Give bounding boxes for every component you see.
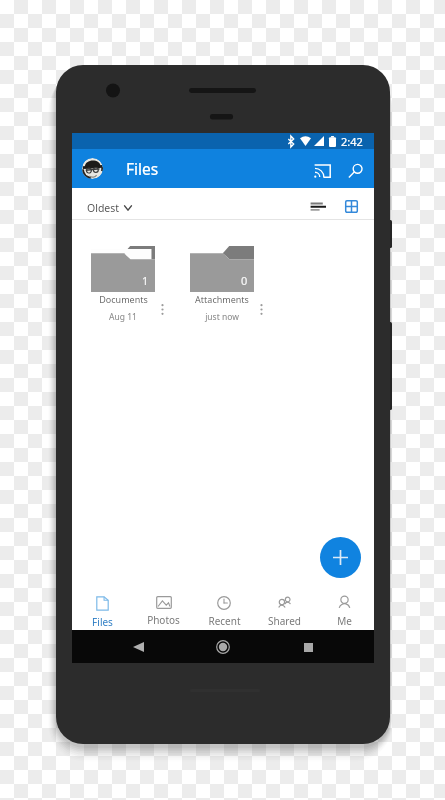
button[interactable]: Search xyxy=(340,156,370,186)
staticText: Shared xyxy=(268,614,301,628)
staticText: 2:42 xyxy=(341,134,363,149)
button[interactable]: Grid view xyxy=(339,194,363,218)
staticText: just now xyxy=(205,311,239,323)
button[interactable]: Sort xyxy=(306,194,330,218)
button[interactable]: Back xyxy=(127,636,149,658)
button[interactable]: Photos xyxy=(133,587,194,630)
button[interactable]: Oldest xyxy=(83,197,136,219)
staticText: 0 xyxy=(241,273,248,288)
staticText: Files xyxy=(126,158,159,179)
staticText: Photos xyxy=(147,613,180,627)
staticText: Attachments xyxy=(195,293,249,305)
staticText: Me xyxy=(337,614,352,628)
button[interactable]: 1 xyxy=(91,246,155,292)
button[interactable]: Recent xyxy=(194,587,254,630)
button[interactable]: Cast xyxy=(307,156,337,186)
button[interactable]: 0 xyxy=(190,246,254,292)
button[interactable]: More options xyxy=(254,302,268,316)
staticText: Documents xyxy=(99,293,148,305)
staticText: Aug 11 xyxy=(109,311,137,323)
staticText: Files xyxy=(92,615,113,629)
button[interactable]: Add xyxy=(320,537,361,578)
staticText: 1 xyxy=(142,273,149,288)
button[interactable]: Recents xyxy=(297,636,319,658)
button[interactable]: More options xyxy=(155,302,169,316)
staticText: Oldest xyxy=(87,201,120,215)
staticText: Recent xyxy=(208,614,241,628)
button[interactable]: Shared xyxy=(254,587,314,630)
button[interactable]: Home xyxy=(212,636,234,658)
button[interactable]: Me xyxy=(314,587,374,630)
button[interactable]: Files xyxy=(72,587,133,630)
button[interactable]: Account xyxy=(82,158,103,179)
